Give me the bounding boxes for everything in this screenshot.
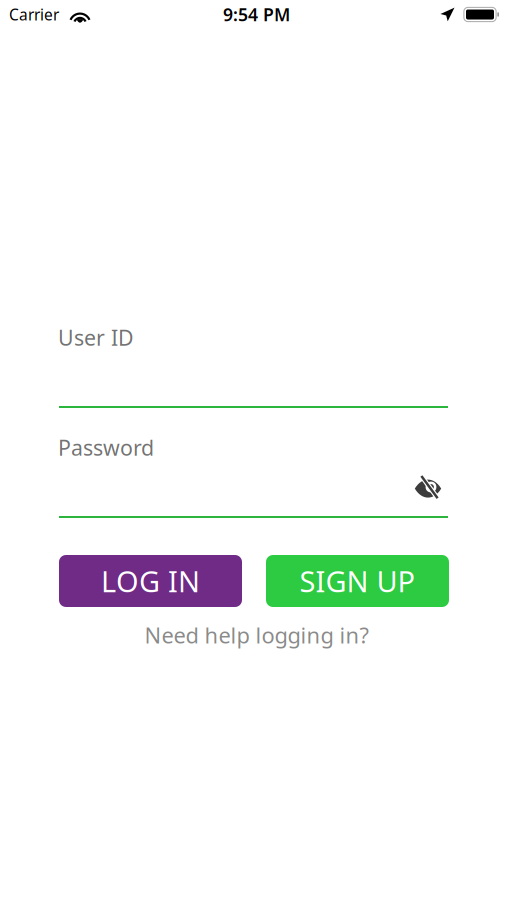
button[interactable]: SIGN UP — [266, 555, 449, 607]
staticText: Need help logging in? — [144, 620, 368, 650]
staticText: LOG IN — [101, 561, 200, 601]
staticText: Password — [58, 433, 154, 462]
staticText: User ID — [58, 323, 134, 352]
staticText: SIGN UP — [299, 561, 415, 601]
staticText: 9:54 PM — [223, 2, 290, 26]
button[interactable]: Show password — [406, 467, 450, 507]
button[interactable]: Need help logging in? — [62, 619, 451, 651]
button[interactable]: LOG IN — [59, 555, 242, 607]
staticText: Carrier — [9, 4, 59, 25]
